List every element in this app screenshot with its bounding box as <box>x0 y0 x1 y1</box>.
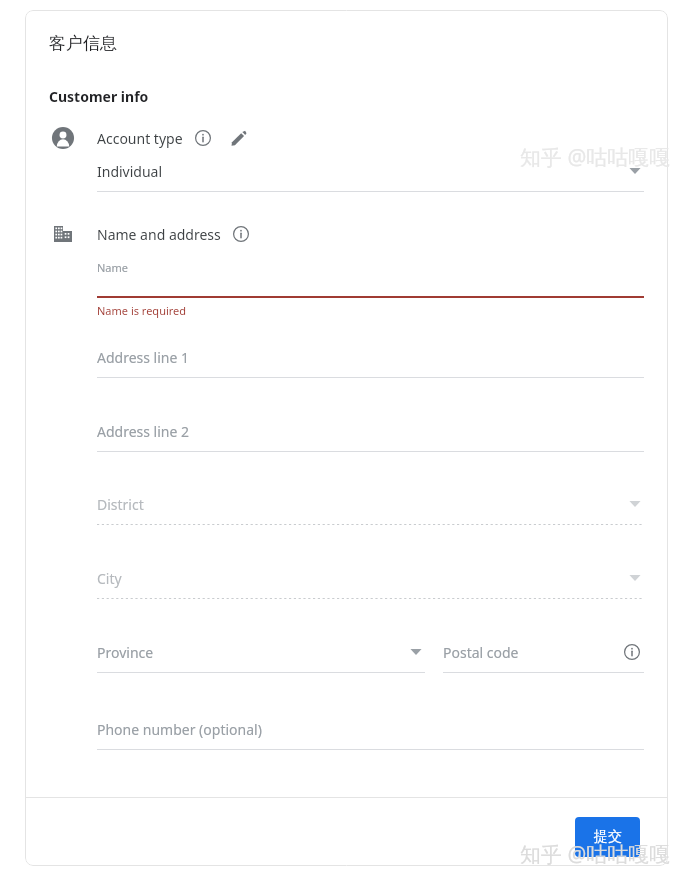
button[interactable]: Phone number (optional) <box>97 716 644 750</box>
staticText: Postal code <box>443 643 620 662</box>
button[interactable]: Edit account type <box>225 124 253 152</box>
button[interactable]: 提交 <box>575 817 640 857</box>
staticText: Name <box>97 260 129 275</box>
staticText: Address line 2 <box>97 422 644 441</box>
button[interactable]: More information <box>191 126 215 150</box>
button[interactable]: Individual <box>97 158 644 192</box>
staticText: Phone number (optional) <box>97 720 644 739</box>
staticText: 客户信息 <box>49 33 117 54</box>
staticText: District <box>97 495 626 514</box>
staticText: Address line 1 <box>97 348 644 367</box>
button[interactable]: Select account type <box>626 162 644 180</box>
staticText: 知乎 @咕咕嘎嘎 <box>520 143 671 172</box>
button[interactable]: Business address <box>51 222 75 246</box>
button[interactable]: City <box>97 565 644 599</box>
button[interactable]: Account <box>51 126 75 150</box>
button[interactable]: Select city <box>626 569 644 587</box>
staticText: Customer info <box>49 87 149 106</box>
button[interactable]: More information <box>229 222 253 246</box>
staticText: Name is required <box>97 303 187 318</box>
staticText: 知乎 @咕咕嘎嘎 <box>520 840 671 869</box>
button[interactable]: Select province <box>407 643 425 661</box>
button[interactable]: Name <box>97 260 644 318</box>
staticText: Province <box>97 643 407 662</box>
button[interactable]: Address line 1 <box>97 344 644 378</box>
button[interactable]: More information <box>620 640 644 664</box>
staticText: City <box>97 569 626 588</box>
button[interactable]: Postal code <box>443 639 644 673</box>
staticText: Individual <box>97 162 626 181</box>
staticText: Account type <box>97 129 183 148</box>
button[interactable]: District <box>97 491 644 525</box>
staticText: 提交 <box>594 828 622 846</box>
staticText: Name and address <box>97 225 221 244</box>
button[interactable]: Select district <box>626 495 644 513</box>
button[interactable]: Province <box>97 639 425 673</box>
button[interactable]: Address line 2 <box>97 418 644 452</box>
